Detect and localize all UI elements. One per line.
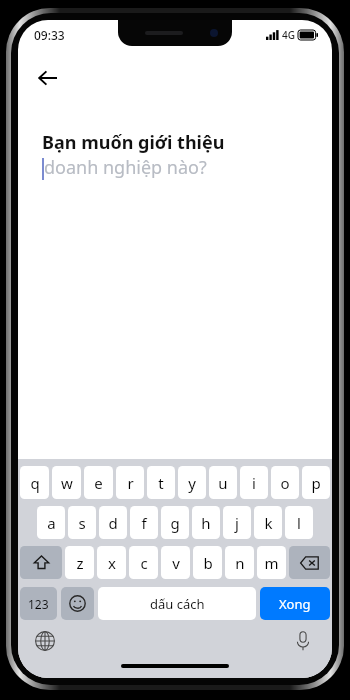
button[interactable]: a (37, 506, 65, 539)
button[interactable]: z (65, 546, 94, 579)
button[interactable]: Xong (260, 587, 330, 620)
staticText: n (235, 553, 245, 573)
staticText: g (170, 513, 180, 533)
staticText: z (76, 553, 84, 573)
button[interactable]: m (257, 546, 286, 579)
button[interactable]: h (192, 506, 220, 539)
button[interactable]: Voice input (288, 626, 318, 656)
button[interactable]: w (52, 466, 81, 499)
button[interactable]: dấu cách (98, 587, 256, 620)
button[interactable]: k (254, 506, 282, 539)
button[interactable]: t (147, 466, 175, 499)
staticText: 4G (282, 28, 295, 42)
staticText: t (158, 473, 164, 493)
button[interactable]: g (161, 506, 189, 539)
staticText: Xong (279, 595, 311, 613)
button[interactable]: Backspace (289, 546, 330, 579)
button[interactable]: u (209, 466, 237, 499)
staticText: v (172, 553, 180, 573)
staticText: l (297, 513, 301, 533)
button[interactable]: x (97, 546, 126, 579)
button[interactable]: p (302, 466, 330, 499)
staticText: f (141, 513, 147, 533)
staticText: b (203, 553, 213, 573)
staticText: o (280, 473, 290, 493)
staticText: p (311, 473, 321, 493)
staticText: doanh nghiệp nào? (44, 155, 207, 180)
button[interactable]: i (240, 466, 268, 499)
button[interactable]: Emoji (61, 587, 94, 620)
staticText: x (108, 553, 116, 573)
staticText: Bạn muốn giới thiệu (42, 130, 225, 155)
staticText: d (108, 513, 118, 533)
staticText: w (61, 473, 73, 493)
button[interactable]: s (68, 506, 96, 539)
button[interactable]: v (161, 546, 190, 579)
staticText: e (94, 473, 103, 493)
staticText: a (47, 513, 56, 533)
staticText: i (252, 473, 256, 493)
staticText: k (264, 513, 273, 533)
button[interactable]: 123 (20, 587, 57, 620)
staticText: 09:33 (34, 27, 65, 43)
staticText: r (127, 473, 134, 493)
staticText: s (78, 513, 86, 533)
button[interactable]: e (84, 466, 113, 499)
staticText: dấu cách (150, 595, 205, 613)
button[interactable]: r (116, 466, 144, 499)
button[interactable]: q (20, 466, 49, 499)
button[interactable]: l (285, 506, 313, 539)
button[interactable]: b (193, 546, 222, 579)
staticText: m (264, 553, 279, 573)
staticText: u (218, 473, 228, 493)
staticText: j (235, 513, 239, 533)
button[interactable]: o (271, 466, 299, 499)
staticText: h (201, 513, 211, 533)
button[interactable]: Change keyboard language (30, 626, 60, 656)
button[interactable]: n (225, 546, 254, 579)
button[interactable]: Back (28, 58, 68, 98)
button[interactable]: f (130, 506, 158, 539)
button[interactable]: Shift (20, 546, 62, 579)
button[interactable]: j (223, 506, 251, 539)
button[interactable]: c (129, 546, 158, 579)
staticText: q (30, 473, 40, 493)
staticText: y (188, 473, 196, 493)
button[interactable]: d (99, 506, 127, 539)
staticText: 123 (28, 596, 49, 612)
staticText: c (140, 553, 148, 573)
button[interactable]: y (178, 466, 206, 499)
